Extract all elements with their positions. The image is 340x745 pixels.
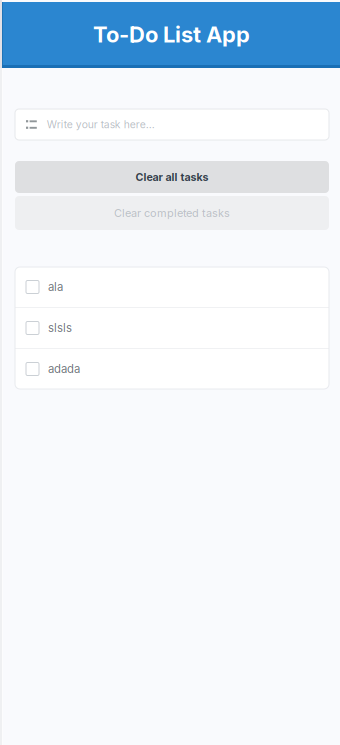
staticText: Clear completed tasks [114, 206, 230, 220]
button[interactable]: Write your task here... [15, 109, 329, 140]
staticText: Write your task here... [47, 118, 155, 131]
button[interactable]: ala [15, 267, 329, 307]
staticText: ala [48, 280, 63, 294]
button[interactable]: Clear completed tasks [15, 196, 329, 230]
button[interactable]: slsls [15, 308, 329, 348]
staticText: adada [48, 362, 80, 376]
staticText: Clear all tasks [135, 170, 208, 183]
staticText: To-Do List App [93, 21, 250, 48]
staticText: slsls [48, 321, 72, 335]
button[interactable]: adada [15, 349, 329, 389]
button[interactable]: Clear all tasks [15, 161, 329, 193]
